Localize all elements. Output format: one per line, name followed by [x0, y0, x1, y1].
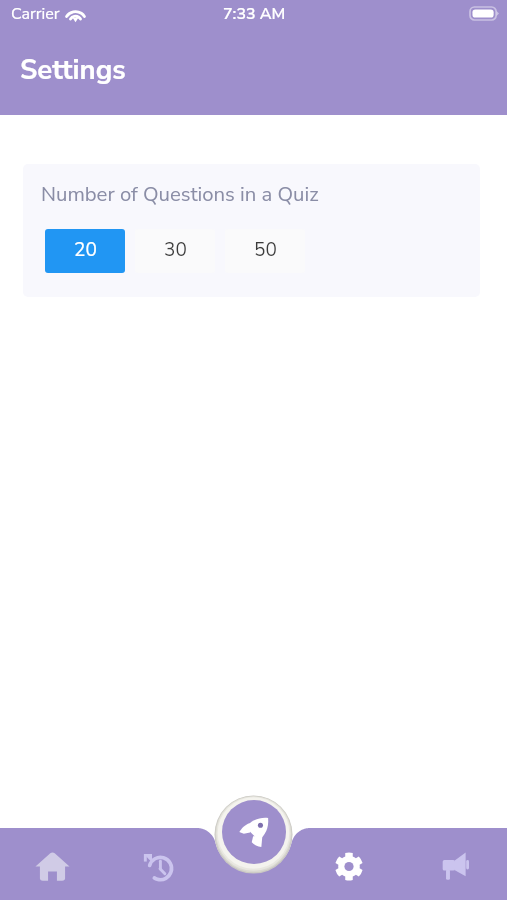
button[interactable]: 20 — [45, 229, 125, 273]
staticText: 20 — [74, 237, 97, 263]
staticText: 7:33 AM — [223, 3, 286, 25]
button[interactable]: 30 — [135, 229, 215, 273]
staticText: Settings — [20, 51, 126, 89]
staticText: Number of Questions in a Quiz — [41, 180, 319, 208]
button[interactable]: Settings — [298, 828, 399, 900]
staticText: 50 — [254, 237, 277, 263]
button[interactable]: 50 — [225, 229, 305, 273]
button[interactable]: History — [107, 828, 208, 900]
staticText: Carrier — [11, 3, 60, 25]
button[interactable]: Launch — [222, 800, 286, 864]
staticText: 30 — [164, 237, 187, 263]
button[interactable]: Announcements — [403, 828, 504, 900]
button[interactable]: Home — [2, 828, 103, 900]
